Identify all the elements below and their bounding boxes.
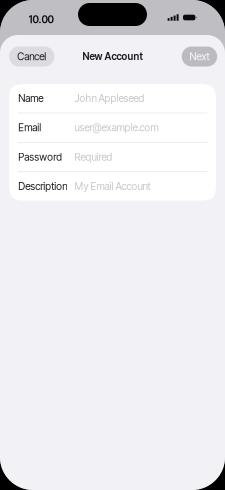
staticText: New Account: [82, 50, 142, 62]
staticText: Name: [18, 92, 43, 104]
staticText: Required: [74, 151, 112, 163]
button[interactable]: Cancel: [9, 46, 54, 66]
staticText: Next: [189, 50, 209, 63]
staticText: Description: [18, 180, 67, 192]
staticText: user@example.com: [74, 121, 158, 134]
button[interactable]: Next: [182, 46, 217, 66]
button[interactable]: Description: [9, 172, 216, 201]
button[interactable]: Name: [9, 84, 216, 113]
staticText: Email: [18, 121, 41, 134]
staticText: John Appleseed: [74, 92, 144, 104]
button[interactable]: Password: [9, 143, 216, 171]
button[interactable]: Email: [9, 113, 216, 142]
staticText: 10.00: [28, 13, 53, 26]
staticText: Cancel: [17, 50, 46, 63]
staticText: Password: [18, 151, 62, 163]
staticText: My Email Account: [74, 180, 150, 192]
